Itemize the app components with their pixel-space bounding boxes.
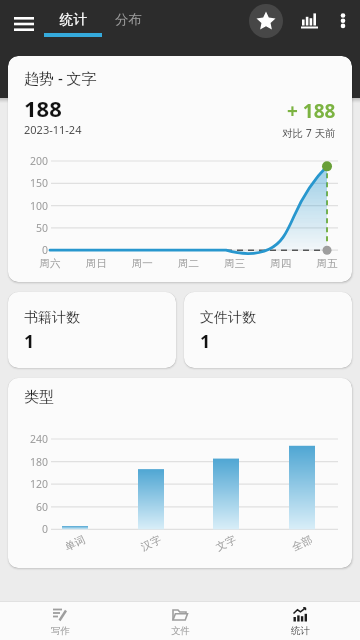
button[interactable]: 书籍计数 <box>8 292 176 368</box>
staticText: 分布 <box>115 11 142 28</box>
staticText: 文件 <box>171 625 190 637</box>
staticText: 写作 <box>51 625 70 637</box>
staticText: 2023-11-24 <box>24 122 82 137</box>
staticText: 文件计数 <box>200 309 256 327</box>
button[interactable] <box>249 4 283 38</box>
button[interactable]: 写作 <box>0 601 120 640</box>
staticText: 统计 <box>291 625 310 637</box>
staticText: 188 <box>24 93 62 123</box>
button[interactable]: 统计 <box>240 601 360 640</box>
staticText: 1 <box>24 329 35 354</box>
button[interactable]: 分布 <box>108 0 148 44</box>
button[interactable] <box>6 12 42 36</box>
staticText: 统计 <box>60 11 87 28</box>
staticText: 类型 <box>24 388 54 407</box>
button[interactable]: 统计 <box>44 0 102 44</box>
button[interactable]: 文件计数 <box>184 292 352 368</box>
staticText: 书籍计数 <box>24 309 80 327</box>
staticText: 对比 7 天前 <box>282 126 336 140</box>
staticText: + 188 <box>287 98 336 124</box>
button[interactable] <box>297 7 323 35</box>
button[interactable]: 文件 <box>120 601 240 640</box>
button[interactable] <box>331 6 355 36</box>
staticText: 趋势 - 文字 <box>24 68 97 88</box>
staticText: 1 <box>200 329 211 354</box>
